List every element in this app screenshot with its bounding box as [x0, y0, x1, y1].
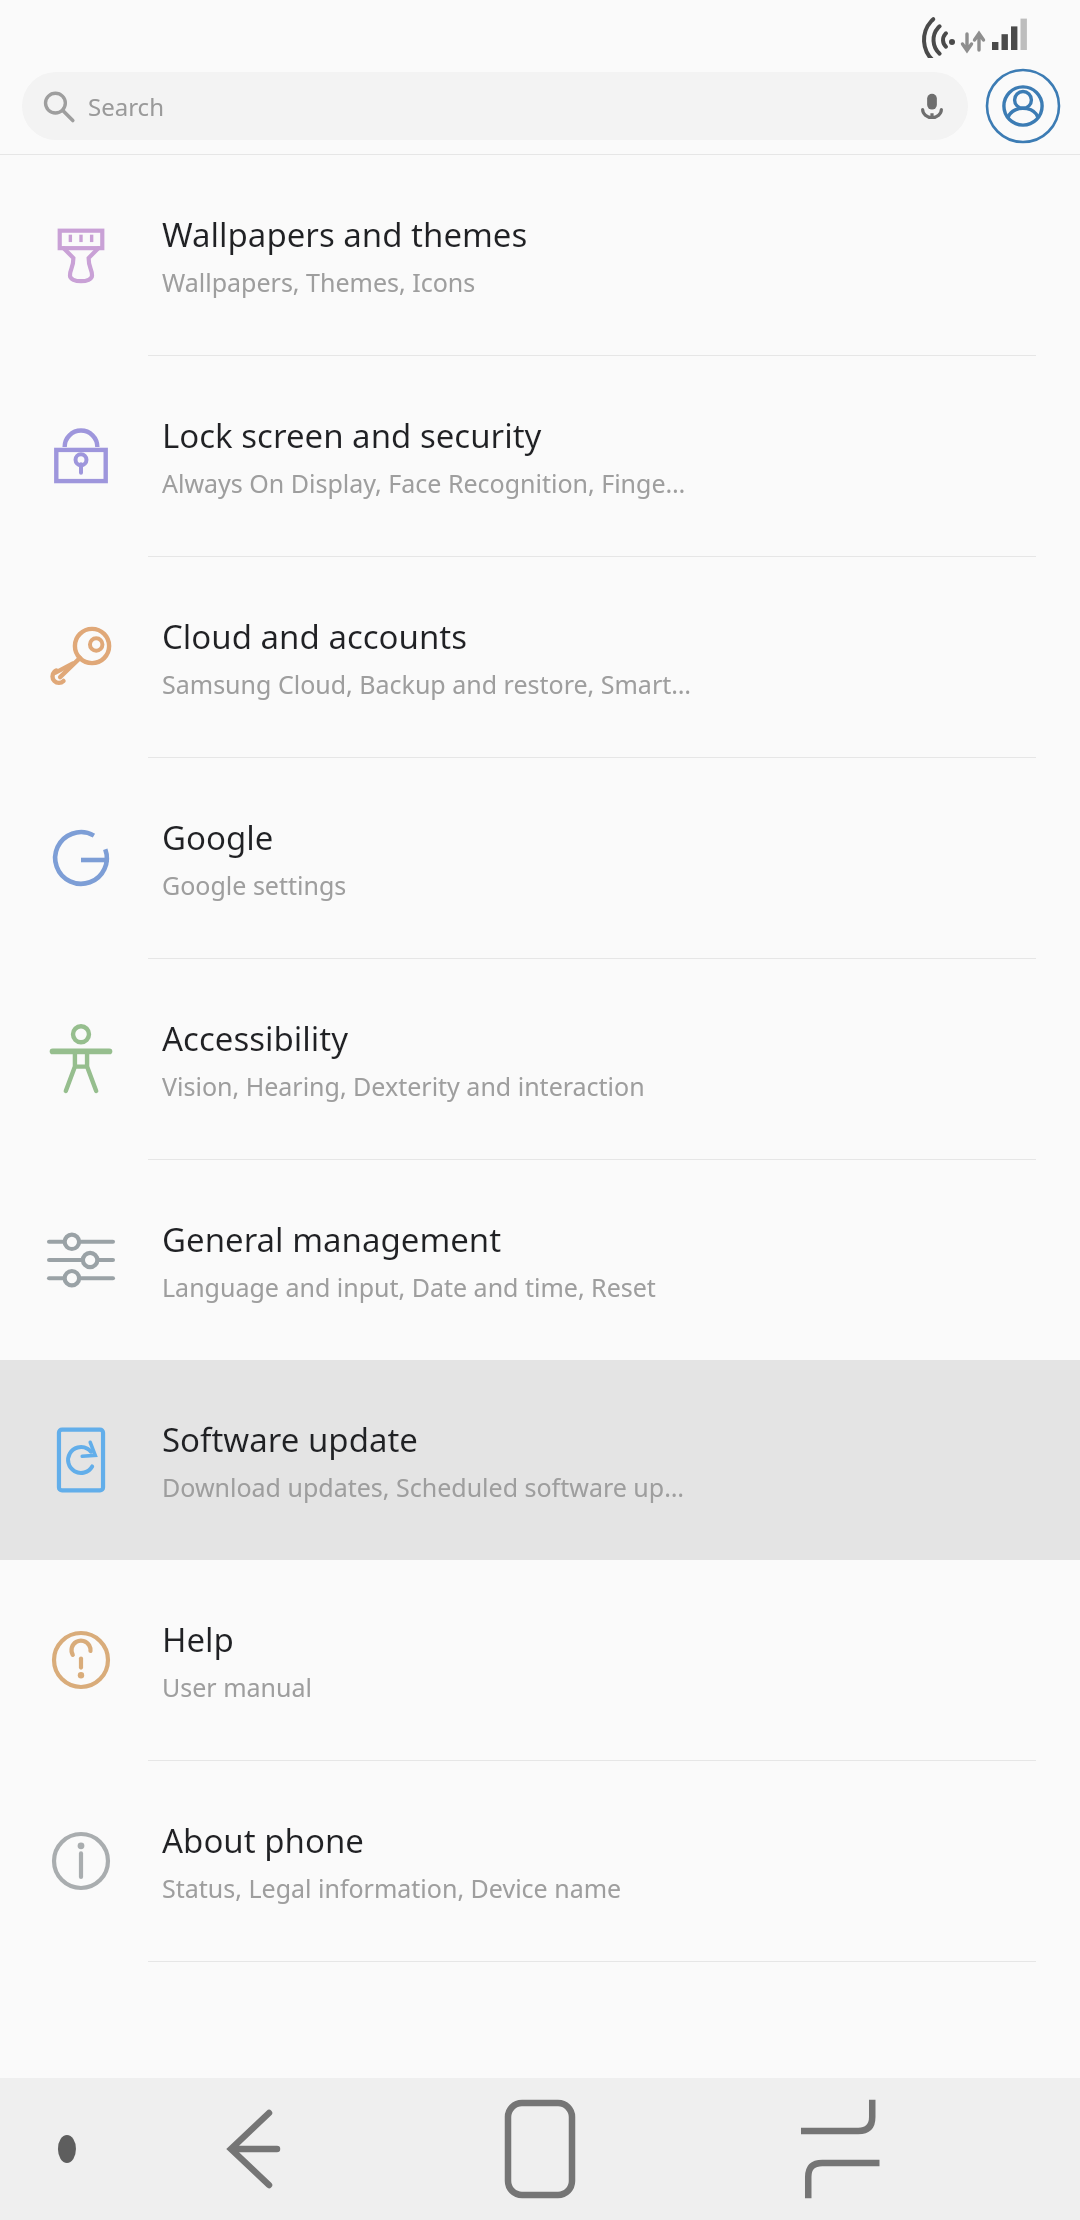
staticText: Accessibility: [162, 1016, 349, 1061]
staticText: Software update: [162, 1417, 418, 1462]
button[interactable]: About phone: [0, 1761, 1080, 1961]
staticText: Vision, Hearing, Dexterity and interacti…: [162, 1069, 645, 1103]
staticText: Wallpapers, Themes, Icons: [162, 265, 476, 299]
staticText: Status, Legal information, Device name: [162, 1871, 622, 1905]
button[interactable]: Help: [0, 1560, 1080, 1760]
staticText: Cloud and accounts: [162, 614, 468, 659]
staticText: General management: [162, 1217, 502, 1262]
staticText: Language and input, Date and time, Reset: [162, 1270, 656, 1304]
staticText: Help: [162, 1617, 234, 1662]
staticText: Always On Display, Face Recognition, Fin…: [162, 466, 686, 500]
staticText: Lock screen and security: [162, 413, 542, 458]
button[interactable]: Lock screen and security: [0, 356, 1080, 556]
staticText: Download updates, Scheduled software up…: [162, 1470, 684, 1504]
staticText: Google: [162, 815, 274, 860]
staticText: Samsung Cloud, Backup and restore, Smart…: [162, 667, 692, 701]
button[interactable]: Wallpapers and themes: [0, 155, 1080, 355]
button[interactable]: Software update: [0, 1360, 1080, 1560]
button[interactable]: Cloud and accounts: [0, 557, 1080, 757]
staticText: Wallpapers and themes: [162, 212, 528, 257]
staticText: Google settings: [162, 868, 347, 902]
button[interactable]: Back: [50, 2078, 180, 2220]
button[interactable]: Accessibility: [0, 959, 1080, 1159]
button[interactable]: Account: [984, 67, 1062, 145]
button[interactable]: General management: [0, 1160, 1080, 1360]
staticText: Search: [88, 90, 164, 123]
staticText: User manual: [162, 1670, 312, 1704]
button[interactable]: Voice search: [914, 88, 950, 124]
button[interactable]: Home: [440, 2078, 640, 2220]
button[interactable]: Search: [22, 72, 968, 140]
button[interactable]: Google: [0, 758, 1080, 958]
staticText: About phone: [162, 1818, 364, 1863]
